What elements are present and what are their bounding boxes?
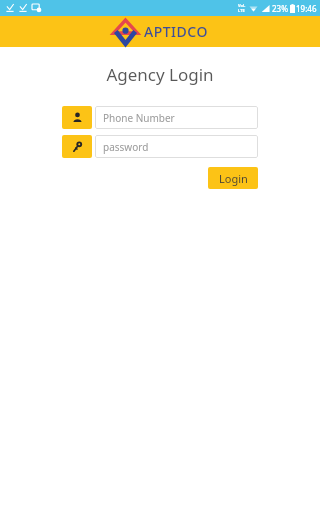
staticText: password xyxy=(103,140,149,154)
staticText: LTE xyxy=(238,8,245,13)
staticText: Phone Number xyxy=(103,111,175,125)
staticText: APTIDCO xyxy=(144,22,208,41)
staticText: 19:46 xyxy=(296,3,317,14)
staticText: 23% xyxy=(272,3,288,14)
button[interactable]: Phone number field xyxy=(62,106,258,129)
staticText: VoL xyxy=(238,3,246,8)
staticText: Agency Login xyxy=(0,63,320,86)
staticText: Login xyxy=(219,171,248,186)
button[interactable]: Password field xyxy=(62,135,258,158)
button[interactable]: Login xyxy=(208,167,258,189)
